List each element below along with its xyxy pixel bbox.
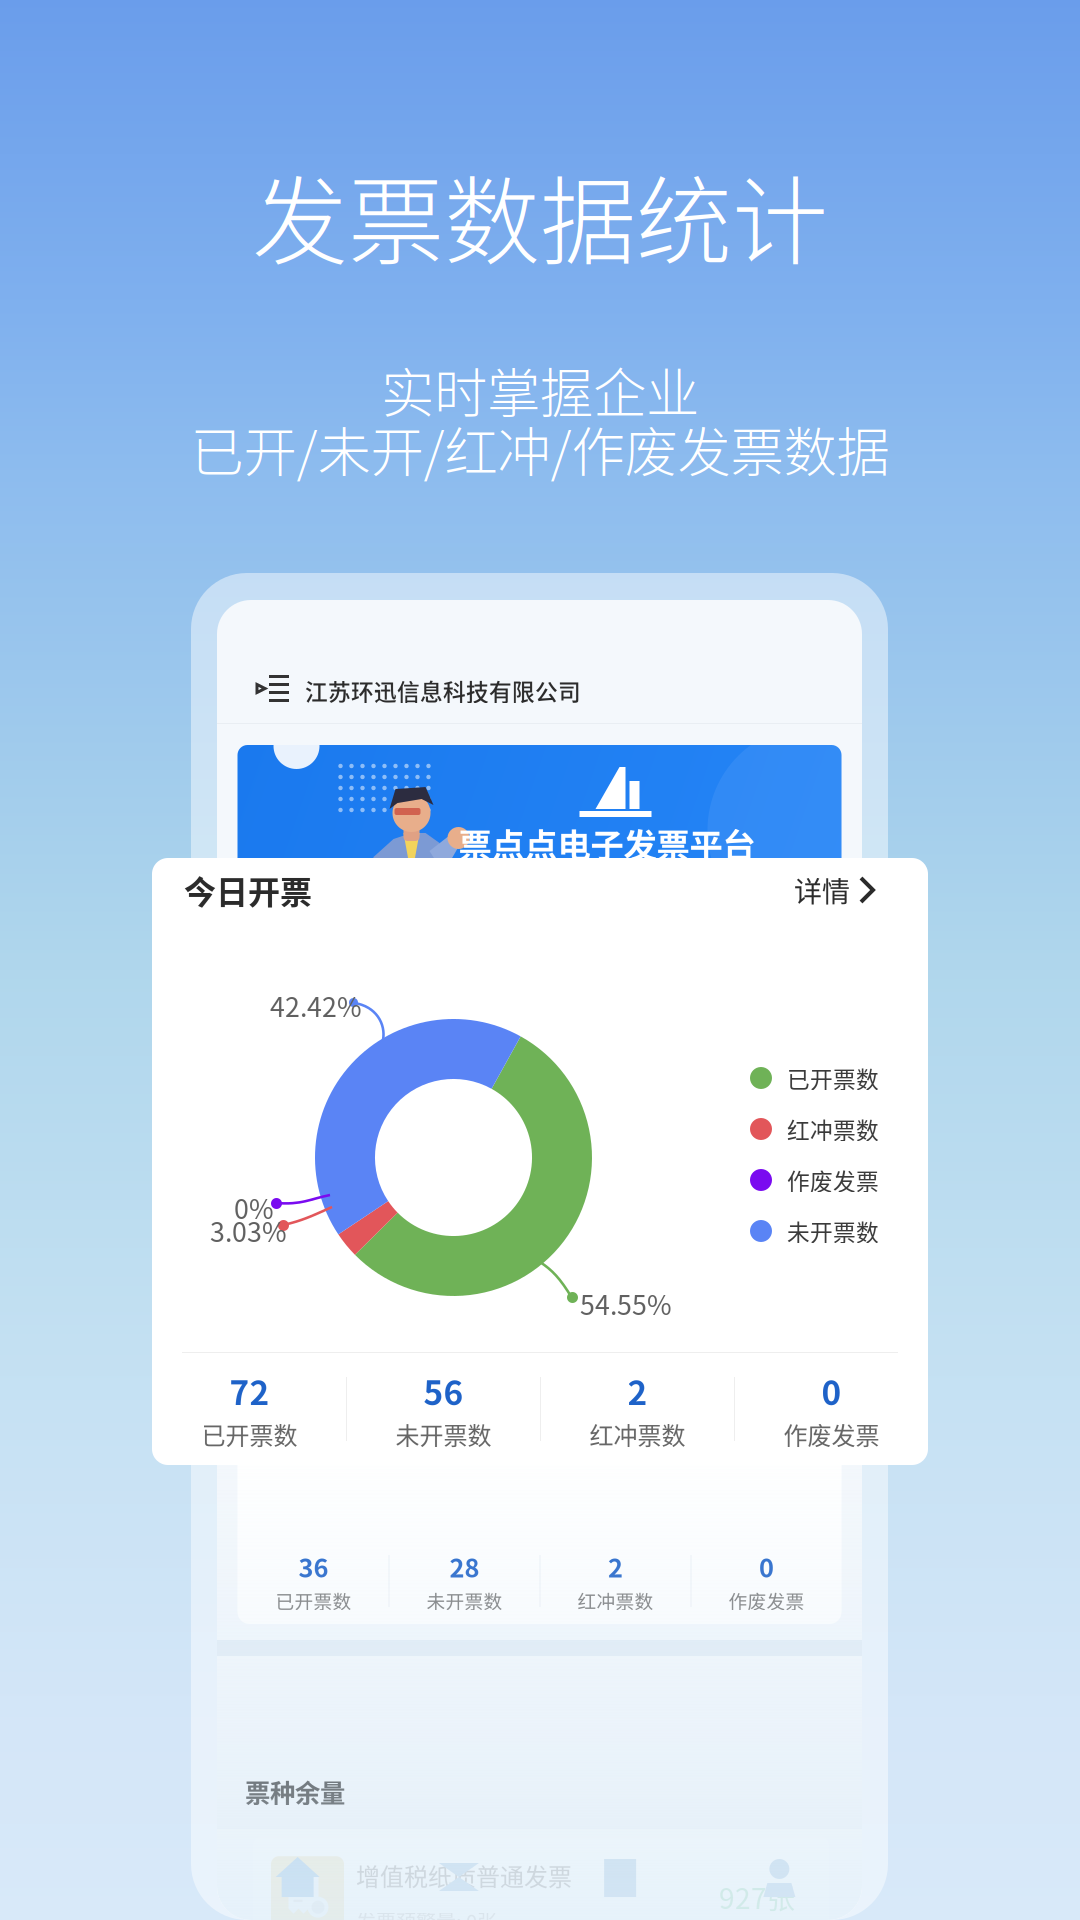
staticText: 0% bbox=[234, 1188, 274, 1227]
staticText: 927张 bbox=[719, 1876, 795, 1917]
staticText: 54.55% bbox=[580, 1284, 672, 1323]
staticText: 未开票数 bbox=[395, 1417, 491, 1452]
staticText: 0 bbox=[759, 1548, 774, 1585]
staticText: 红冲票数 bbox=[787, 1113, 879, 1145]
staticText: 未开票数 bbox=[426, 1587, 502, 1614]
staticText: 2 bbox=[608, 1548, 623, 1585]
staticText: 56 bbox=[423, 1366, 463, 1415]
button[interactable]: 今日开票 bbox=[152, 854, 928, 926]
staticText: 3.03% bbox=[210, 1211, 287, 1250]
staticText: 作废发票 bbox=[783, 1417, 879, 1452]
staticText: 作废发票 bbox=[728, 1587, 804, 1614]
staticText: 增值税纸质普通发票 bbox=[356, 1858, 572, 1893]
button[interactable]: 单据 bbox=[539, 1829, 701, 1920]
staticText: 详情 bbox=[794, 870, 850, 910]
staticText: 发票预警量: 0张 bbox=[356, 1907, 497, 1920]
staticText: 已开票数 bbox=[201, 1417, 297, 1452]
staticText: 36 bbox=[298, 1548, 328, 1585]
staticText: 实时掌握企业 bbox=[381, 351, 699, 428]
button[interactable]: 我的 bbox=[701, 1829, 862, 1920]
staticText: 票点点电子发票平台 bbox=[458, 819, 755, 867]
staticText: 作废发票 bbox=[787, 1164, 879, 1196]
staticText: 未开票数 bbox=[787, 1215, 879, 1247]
staticText: 2 bbox=[627, 1366, 647, 1415]
staticText: 已开票数 bbox=[787, 1062, 879, 1094]
staticText: 今日开票 bbox=[261, 985, 373, 1025]
button[interactable]: 首页 bbox=[217, 1829, 378, 1920]
staticText: 今日开票 bbox=[184, 867, 312, 913]
staticText: 0 bbox=[821, 1366, 841, 1415]
staticText: 28 bbox=[449, 1548, 479, 1585]
staticText: 发票数据统计 bbox=[252, 145, 828, 284]
staticText: 票种余量 bbox=[245, 1773, 345, 1810]
staticText: 已开/未开/红冲/作废发票数据 bbox=[190, 410, 889, 487]
staticText: 已开票数 bbox=[275, 1587, 351, 1614]
button[interactable]: 增值税纸质普通发票 bbox=[217, 1836, 829, 1920]
staticText: 红冲票数 bbox=[577, 1587, 653, 1614]
staticText: 江苏环迅信息科技有限公司 bbox=[305, 674, 581, 707]
staticText: 42.42% bbox=[270, 986, 362, 1025]
staticText: 红冲票数 bbox=[589, 1417, 685, 1452]
staticText: 72 bbox=[229, 1366, 269, 1415]
button[interactable]: 开票 bbox=[378, 1829, 539, 1920]
